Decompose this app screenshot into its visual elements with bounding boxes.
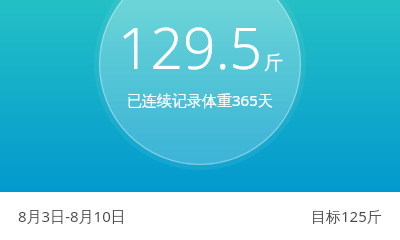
staticText: 129.5 bbox=[118, 8, 263, 86]
staticText: 目标125斤 bbox=[311, 206, 382, 226]
staticText: 8月3日-8月10日 bbox=[18, 206, 126, 226]
button[interactable]: 8月3日-8月10日 bbox=[18, 206, 126, 226]
button[interactable]: 已连续记录体重365天 bbox=[127, 90, 273, 110]
staticText: 已连续记录体重365天 bbox=[127, 90, 273, 110]
staticText: 斤 bbox=[264, 51, 283, 75]
button[interactable]: 目标125斤 bbox=[311, 206, 382, 226]
button[interactable]: 129.5 bbox=[118, 8, 283, 86]
